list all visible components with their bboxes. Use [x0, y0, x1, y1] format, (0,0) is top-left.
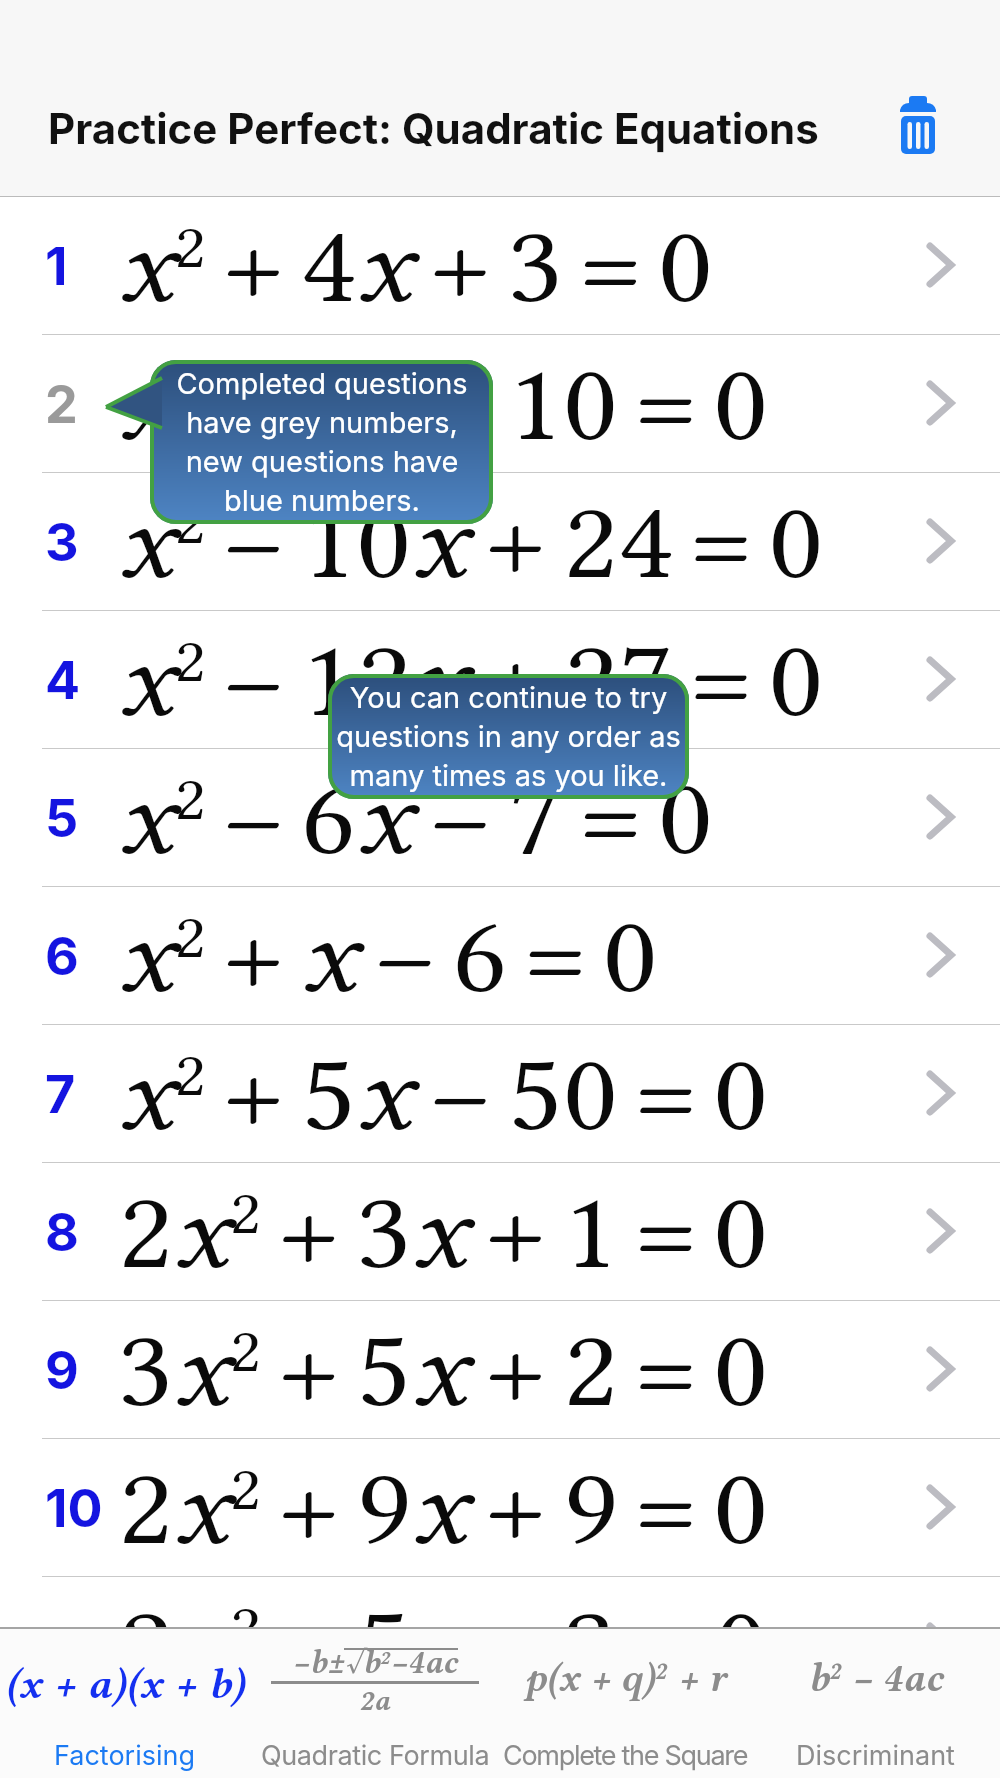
- button[interactable]: b2 − 4ac: [750, 1627, 1000, 1778]
- staticText: (x + a)(x + b): [5, 1659, 245, 1709]
- staticText: x2 + 3x − 10 = 0: [118, 342, 769, 466]
- staticText: p(x + q)2 + r: [524, 1655, 726, 1701]
- staticText: x2 + 5x − 50 = 0: [118, 1032, 769, 1156]
- button[interactable]: p(x + q)2 + r: [500, 1627, 750, 1778]
- staticText: 7: [45, 1063, 76, 1126]
- staticText: Completed questions have grey numbers, n…: [176, 366, 468, 518]
- staticText: 2x2 + 3x + 1 = 0: [118, 1170, 769, 1294]
- button[interactable]: 8: [0, 1163, 1000, 1301]
- staticText: 8: [45, 1201, 79, 1264]
- button[interactable]: 7: [0, 1025, 1000, 1163]
- staticText: x2 − 12x + 27 = 0: [118, 618, 824, 742]
- staticText: You can continue to try questions in any…: [336, 680, 681, 793]
- staticText: 4: [45, 649, 81, 712]
- staticText: b2 − 4ac: [808, 1655, 943, 1701]
- button[interactable]: (x + a)(x + b): [0, 1627, 250, 1778]
- staticText: Complete the Square: [503, 1739, 748, 1772]
- staticText: x2 + x − 6 = 0: [118, 894, 659, 1018]
- staticText: 2: [45, 373, 78, 436]
- button[interactable]: 6: [0, 887, 1000, 1025]
- button[interactable]: 3: [0, 473, 1000, 611]
- staticText: x2 − 6x − 7 = 0: [118, 756, 714, 880]
- staticText: Practice Perfect: Quadratic Equations: [48, 103, 819, 154]
- staticText: 1: [45, 235, 68, 298]
- staticText: x2 + 4x + 3 = 0: [118, 204, 714, 328]
- button[interactable]: −b±√b2−4ac: [250, 1627, 500, 1778]
- staticText: 2x2 + 9x + 9 = 0: [118, 1446, 769, 1570]
- button[interactable]: 9: [0, 1301, 1000, 1439]
- staticText: 3x2 + 5x + 2 = 0: [118, 1308, 769, 1432]
- button[interactable]: 1: [0, 197, 1000, 335]
- staticText: 3: [45, 511, 79, 574]
- button[interactable]: [896, 96, 940, 154]
- button[interactable]: 4: [0, 611, 1000, 749]
- staticText: −b±√b2−4ac: [292, 1643, 458, 1681]
- staticText: 2a: [359, 1684, 391, 1717]
- staticText: Discriminant: [796, 1739, 955, 1772]
- button[interactable]: 2: [0, 335, 1000, 473]
- staticText: x2 − 10x + 24 = 0: [118, 480, 824, 604]
- button[interactable]: 11: [0, 1577, 1000, 1715]
- staticText: 9: [45, 1339, 79, 1402]
- button[interactable]: 10: [0, 1439, 1000, 1577]
- staticText: 10: [45, 1477, 103, 1540]
- staticText: Quadratic Formula: [261, 1739, 490, 1772]
- staticText: 11: [45, 1615, 90, 1678]
- staticText: 5: [45, 787, 79, 850]
- button[interactable]: 5: [0, 749, 1000, 887]
- staticText: 2x2 + 5x + 3 = 0: [118, 1584, 769, 1708]
- staticText: Factorising: [54, 1739, 196, 1772]
- staticText: 6: [45, 925, 79, 988]
